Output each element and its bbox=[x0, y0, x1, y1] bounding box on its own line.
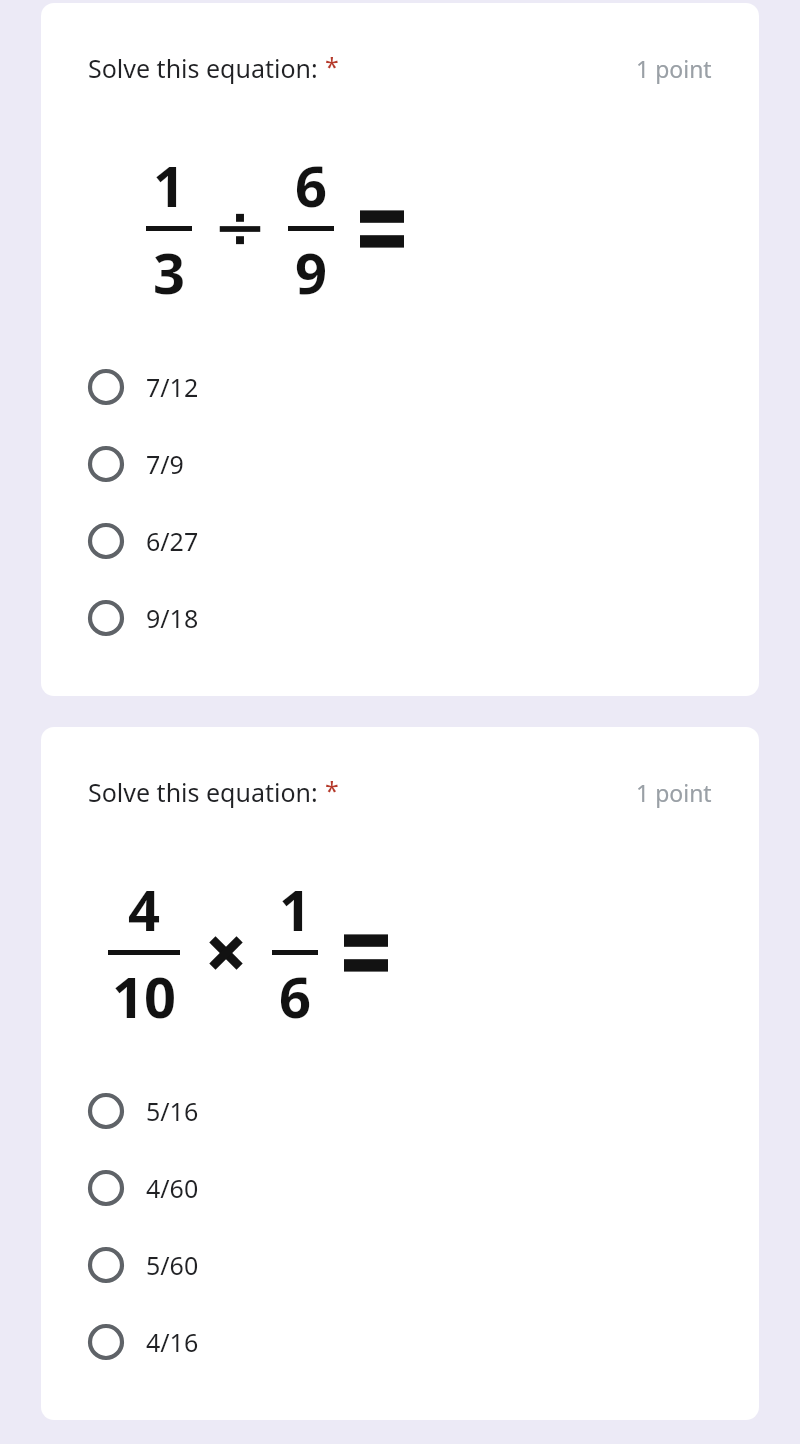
staticText: 6 bbox=[279, 958, 312, 1034]
button[interactable]: 6/27 bbox=[88, 502, 712, 579]
staticText: Solve this equation: bbox=[88, 51, 318, 85]
staticText: 1 bbox=[279, 871, 312, 947]
button[interactable]: 5/60 bbox=[88, 1226, 712, 1303]
staticText: 7/12 bbox=[146, 370, 199, 404]
staticText: Solve this equation: bbox=[88, 775, 318, 809]
staticText: 6 bbox=[295, 147, 328, 223]
staticText: 4/16 bbox=[146, 1325, 199, 1359]
staticText: 10 bbox=[112, 958, 177, 1034]
staticText: 4/60 bbox=[146, 1171, 199, 1205]
button[interactable]: 9/18 bbox=[88, 579, 712, 656]
staticText: 9 bbox=[295, 234, 328, 310]
staticText: 4 bbox=[128, 871, 161, 947]
button[interactable]: 4/16 bbox=[88, 1303, 712, 1380]
staticText: 1 bbox=[153, 147, 186, 223]
staticText: 9/18 bbox=[146, 601, 199, 635]
staticText: * bbox=[325, 49, 339, 83]
staticText: 5/60 bbox=[146, 1248, 199, 1282]
staticText: * bbox=[325, 773, 339, 807]
button[interactable]: 7/12 bbox=[88, 348, 712, 425]
button[interactable]: 7/9 bbox=[88, 425, 712, 502]
staticText: 3 bbox=[153, 234, 186, 310]
staticText: 1 point bbox=[636, 53, 712, 84]
staticText: 5/16 bbox=[146, 1094, 199, 1128]
staticText: 7/9 bbox=[146, 447, 184, 481]
staticText: 6/27 bbox=[146, 524, 199, 558]
staticText: 1 point bbox=[636, 777, 712, 808]
button[interactable]: 5/16 bbox=[88, 1072, 712, 1149]
button[interactable]: 4/60 bbox=[88, 1149, 712, 1226]
